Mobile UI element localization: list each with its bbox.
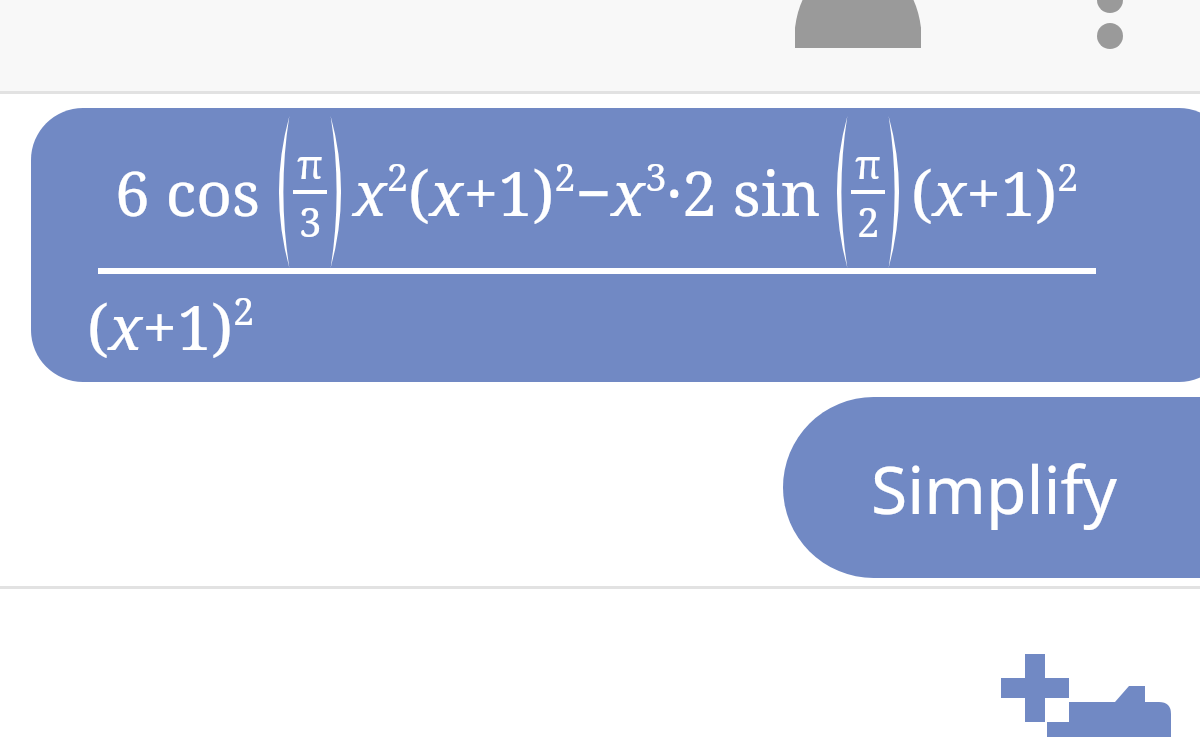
staticText: π [297,136,323,190]
button[interactable]: Add photo [995,640,1180,737]
button[interactable]: 6 cos [31,108,1200,382]
button[interactable]: More options [1084,0,1136,52]
staticText: x2(x+1)2−x3·2 sin [353,150,821,234]
button[interactable]: Keyboard [795,0,921,48]
staticText: Simplify [871,443,1117,533]
staticText: 2 [857,194,880,248]
staticText: 6 cos [115,150,261,234]
staticText: (x+1)2 [87,284,255,368]
staticText: 3 [299,194,322,248]
staticText: (x+1)2 [911,150,1079,234]
button[interactable]: Simplify [783,397,1200,578]
staticText: π [855,136,881,190]
